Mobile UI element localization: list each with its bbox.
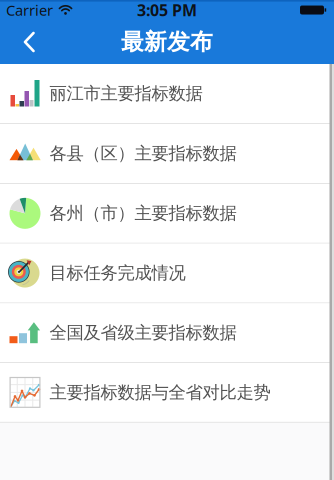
staticText: 目标任务完成情况 (49, 262, 185, 284)
button[interactable]: 全国及省级主要指标数据 (0, 303, 334, 363)
staticText: 主要指标数据与全省对比走势 (49, 382, 270, 403)
button[interactable]: Back (0, 29, 41, 55)
staticText: 最新发布 (121, 28, 213, 56)
staticText: 3:05 PM (137, 0, 197, 21)
button[interactable]: 各州（市）主要指标数据 (0, 184, 334, 244)
staticText: 各县（区）主要指标数据 (49, 143, 236, 164)
staticText: Carrier (6, 0, 53, 20)
button[interactable]: 目标任务完成情况 (0, 244, 334, 303)
button[interactable]: 丽江市主要指标数据 (0, 64, 334, 124)
staticText: 全国及省级主要指标数据 (49, 322, 236, 343)
button[interactable]: 主要指标数据与全省对比走势 (0, 363, 334, 423)
button[interactable]: 各县（区）主要指标数据 (0, 124, 334, 184)
staticText: 丽江市主要指标数据 (49, 83, 202, 104)
staticText: 各州（市）主要指标数据 (49, 203, 236, 224)
